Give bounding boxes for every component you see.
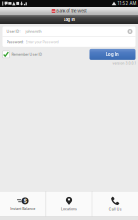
staticText: version 3.0.0.1 (112, 61, 135, 65)
button[interactable]: Call Us (92, 191, 138, 216)
staticText: Locations (61, 207, 77, 211)
staticText: Instant Balance (10, 207, 35, 211)
staticText: Log In (106, 52, 119, 57)
staticText: Remember User ID (11, 52, 42, 56)
button[interactable]: $ (0, 191, 46, 216)
button[interactable]: Clear User ID (126, 27, 133, 36)
staticText: johnsmith (25, 29, 41, 34)
button[interactable]: Log In (89, 49, 135, 60)
staticText: Bank of the West (56, 9, 86, 13)
staticText: $ (24, 198, 27, 204)
button[interactable]: Locations (46, 191, 92, 216)
staticText: User ID: (6, 29, 20, 34)
button[interactable]: Remember User ID (2, 50, 42, 59)
staticText: Password: (6, 40, 23, 44)
staticText: Enter your Password (25, 40, 58, 44)
staticText: Log In (63, 17, 74, 22)
staticText: 11:52 AM (117, 1, 136, 6)
staticText: Call Us (109, 207, 122, 211)
